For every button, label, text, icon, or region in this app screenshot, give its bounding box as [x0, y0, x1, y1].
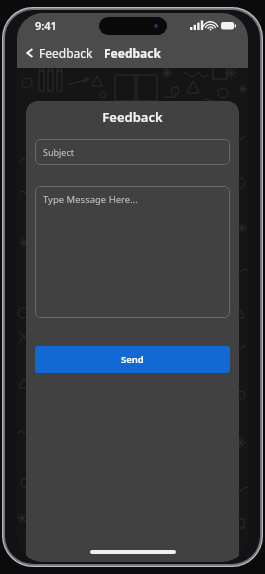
staticText: Send: [121, 353, 144, 366]
staticText: Feedback: [39, 45, 93, 61]
staticText: Feedback: [104, 45, 161, 61]
staticText: Type Message Here...: [43, 193, 138, 206]
button[interactable]: Subject: [35, 139, 230, 165]
staticText: Subject: [43, 146, 75, 158]
button[interactable]: Feedback: [21, 42, 99, 64]
button[interactable]: Type Message Here...: [35, 186, 230, 318]
staticText: Feedback: [26, 108, 239, 126]
button[interactable]: Send: [35, 346, 230, 373]
staticText: 9:41: [35, 18, 57, 33]
